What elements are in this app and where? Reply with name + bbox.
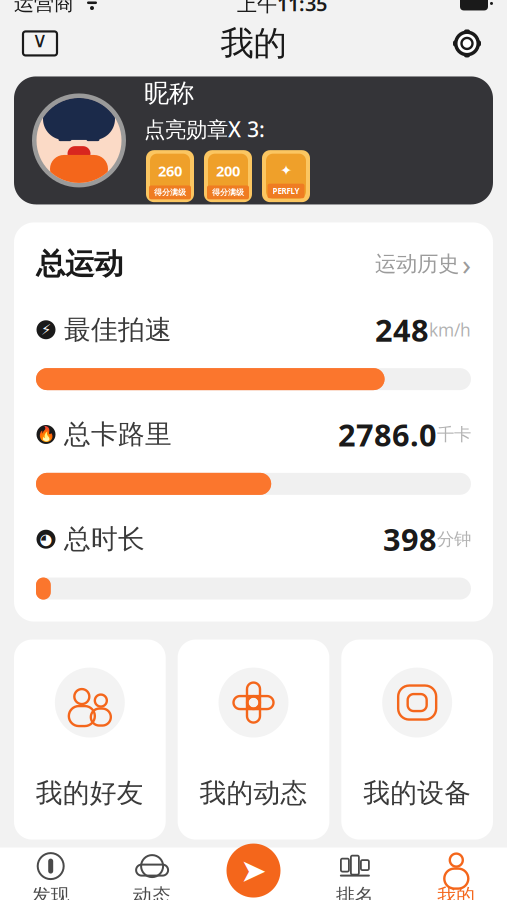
staticText: 🔥	[37, 426, 55, 443]
staticText: 260	[158, 161, 182, 180]
button[interactable]: 我的好友	[14, 640, 166, 840]
staticText: 我的	[437, 884, 475, 900]
button[interactable]: 排名	[304, 848, 406, 900]
staticText: ◕	[39, 531, 52, 547]
button[interactable]: 开始运动	[226, 844, 280, 898]
staticText: 运营商	[14, 0, 74, 16]
staticText: PERFLY	[272, 186, 299, 196]
staticText: 总卡路里	[64, 418, 172, 451]
staticText: 我的设备	[363, 777, 471, 810]
staticText: 我的好友	[36, 777, 144, 810]
button[interactable]: 我的	[406, 848, 507, 900]
button[interactable]: 动态	[101, 848, 203, 900]
staticText: km/h	[429, 318, 471, 341]
staticText: 248	[375, 309, 429, 350]
button[interactable]: 消息	[15, 19, 65, 67]
staticText: ⚡︎	[41, 321, 51, 338]
staticText: 最佳拍速	[64, 313, 172, 346]
staticText: 上午11:35	[237, 0, 327, 17]
staticText: 2786.0	[338, 414, 437, 455]
staticText: 总运动	[36, 246, 123, 282]
button[interactable]: 设置	[442, 19, 492, 67]
staticText: 昵称	[144, 78, 194, 109]
staticText: 总时长	[64, 523, 145, 556]
staticText: ›	[462, 244, 471, 283]
staticText: 分钟	[437, 529, 471, 550]
staticText: 得分满级	[212, 187, 244, 197]
button[interactable]: 我的动态	[178, 640, 329, 840]
staticText: 点亮勋章X 3:	[144, 115, 265, 143]
staticText: 排名	[336, 884, 374, 900]
staticText: 398	[383, 519, 437, 559]
staticText: 我的	[220, 23, 286, 64]
button[interactable]: 我的设备	[341, 640, 493, 840]
button[interactable]: 发现	[0, 848, 101, 900]
staticText: 得分满级	[154, 187, 186, 197]
staticText: ➤	[240, 852, 267, 889]
staticText: ∨	[32, 28, 48, 52]
staticText: ✦	[280, 162, 292, 179]
staticText: 发现	[32, 884, 70, 900]
staticText: 200	[216, 161, 240, 180]
staticText: 我的动态	[199, 777, 307, 810]
staticText: 动态	[133, 884, 171, 900]
staticText: 千卡	[437, 424, 471, 445]
button[interactable]: 昵称	[14, 76, 493, 204]
staticText: 运动历史	[375, 251, 459, 277]
button[interactable]: 运动历史	[375, 244, 471, 283]
